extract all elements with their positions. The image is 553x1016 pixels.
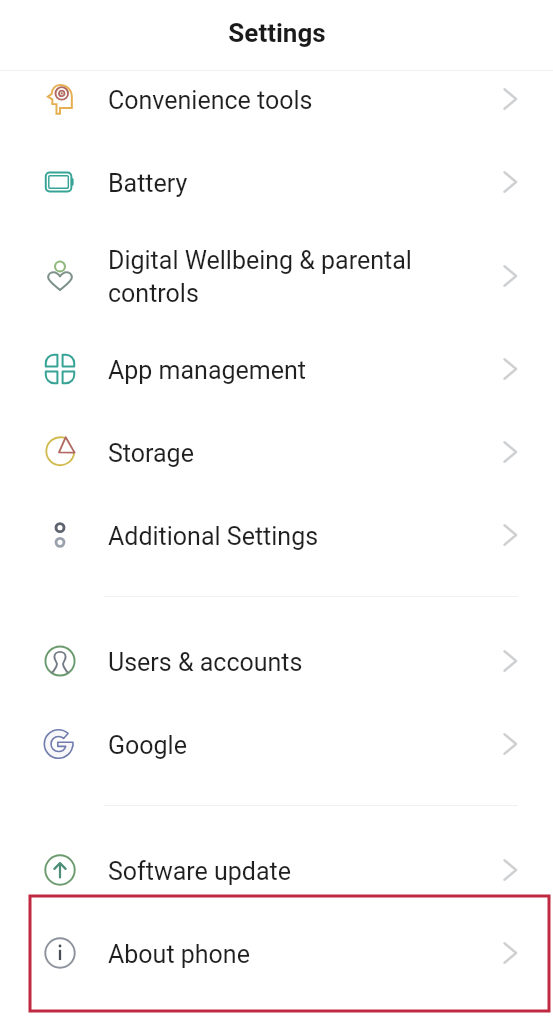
button[interactable]: About phone	[0, 912, 553, 995]
staticText: Google	[108, 731, 498, 811]
staticText: Storage	[108, 439, 498, 519]
staticText: Digital Wellbeing & parental controls	[108, 246, 498, 326]
button[interactable]: Users & accounts	[0, 620, 553, 703]
staticText: Convenience tools	[108, 86, 498, 156]
button[interactable]: Battery	[0, 141, 553, 224]
button[interactable]: Additional Settings	[0, 494, 553, 577]
button[interactable]: Digital Wellbeing & parental controls	[0, 224, 553, 328]
button[interactable]: Software update	[0, 829, 553, 912]
staticText: Users & accounts	[108, 648, 498, 728]
staticText: Battery	[108, 169, 498, 249]
staticText: Additional Settings	[108, 522, 498, 602]
staticText: App management	[108, 356, 498, 436]
button[interactable]: Convenience tools	[0, 71, 553, 141]
button[interactable]: App management	[0, 328, 553, 411]
staticText: Settings	[228, 18, 326, 48]
button[interactable]: Google	[0, 703, 553, 786]
staticText: About phone	[108, 940, 498, 1016]
button[interactable]: Storage	[0, 411, 553, 494]
staticText: Software update	[108, 857, 498, 937]
